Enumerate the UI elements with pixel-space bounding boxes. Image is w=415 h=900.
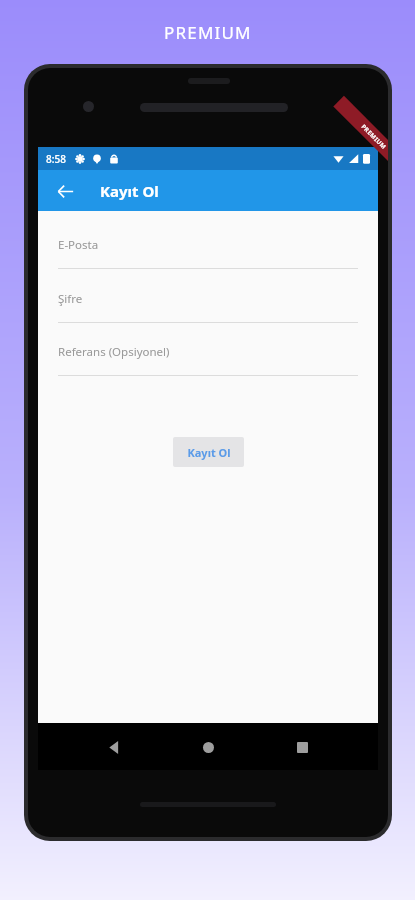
- staticText: Kayıt Ol: [100, 181, 159, 201]
- button[interactable]: Back: [50, 176, 80, 206]
- button[interactable]: Home: [190, 729, 226, 765]
- button[interactable]: Referans (Opsiyonel): [58, 344, 358, 376]
- staticText: PREMIUM: [359, 123, 388, 152]
- button[interactable]: Kayıt Ol: [173, 437, 244, 467]
- button[interactable]: Şifre: [58, 291, 358, 323]
- button[interactable]: E-Posta: [58, 237, 358, 269]
- staticText: Referans (Opsiyonel): [58, 344, 170, 360]
- button[interactable]: Recent apps: [284, 729, 320, 765]
- staticText: 8:58: [46, 152, 66, 166]
- staticText: Kayıt Ol: [187, 445, 231, 460]
- staticText: PREMIUM: [164, 21, 252, 44]
- button[interactable]: Back: [96, 729, 132, 765]
- staticText: Şifre: [58, 291, 83, 307]
- staticText: E-Posta: [58, 237, 99, 253]
